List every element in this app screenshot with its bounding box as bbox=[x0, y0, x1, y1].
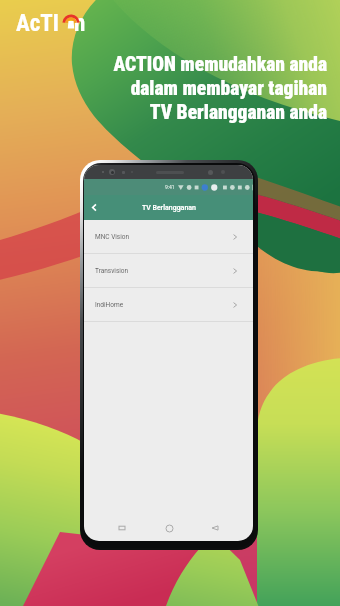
button[interactable]: MNC Vision bbox=[84, 220, 253, 253]
button[interactable]: Back bbox=[84, 195, 253, 220]
staticText: IndiHome bbox=[95, 301, 124, 309]
staticText: 9:41 bbox=[165, 184, 175, 190]
staticText: n bbox=[74, 10, 86, 37]
staticText: Transvision bbox=[95, 267, 129, 275]
button[interactable]: Home bbox=[160, 519, 178, 537]
button[interactable]: Recents bbox=[113, 519, 131, 537]
button[interactable]: IndiHome bbox=[84, 288, 253, 321]
button[interactable]: Transvision bbox=[84, 254, 253, 287]
staticText: MNC Vision bbox=[95, 233, 130, 241]
staticText: ACTION memudahkan anda dalam membayar ta… bbox=[113, 53, 327, 124]
staticText: TV Berlangganan bbox=[142, 204, 196, 212]
button[interactable]: Back bbox=[206, 519, 224, 537]
staticText: AcTI bbox=[16, 10, 60, 37]
